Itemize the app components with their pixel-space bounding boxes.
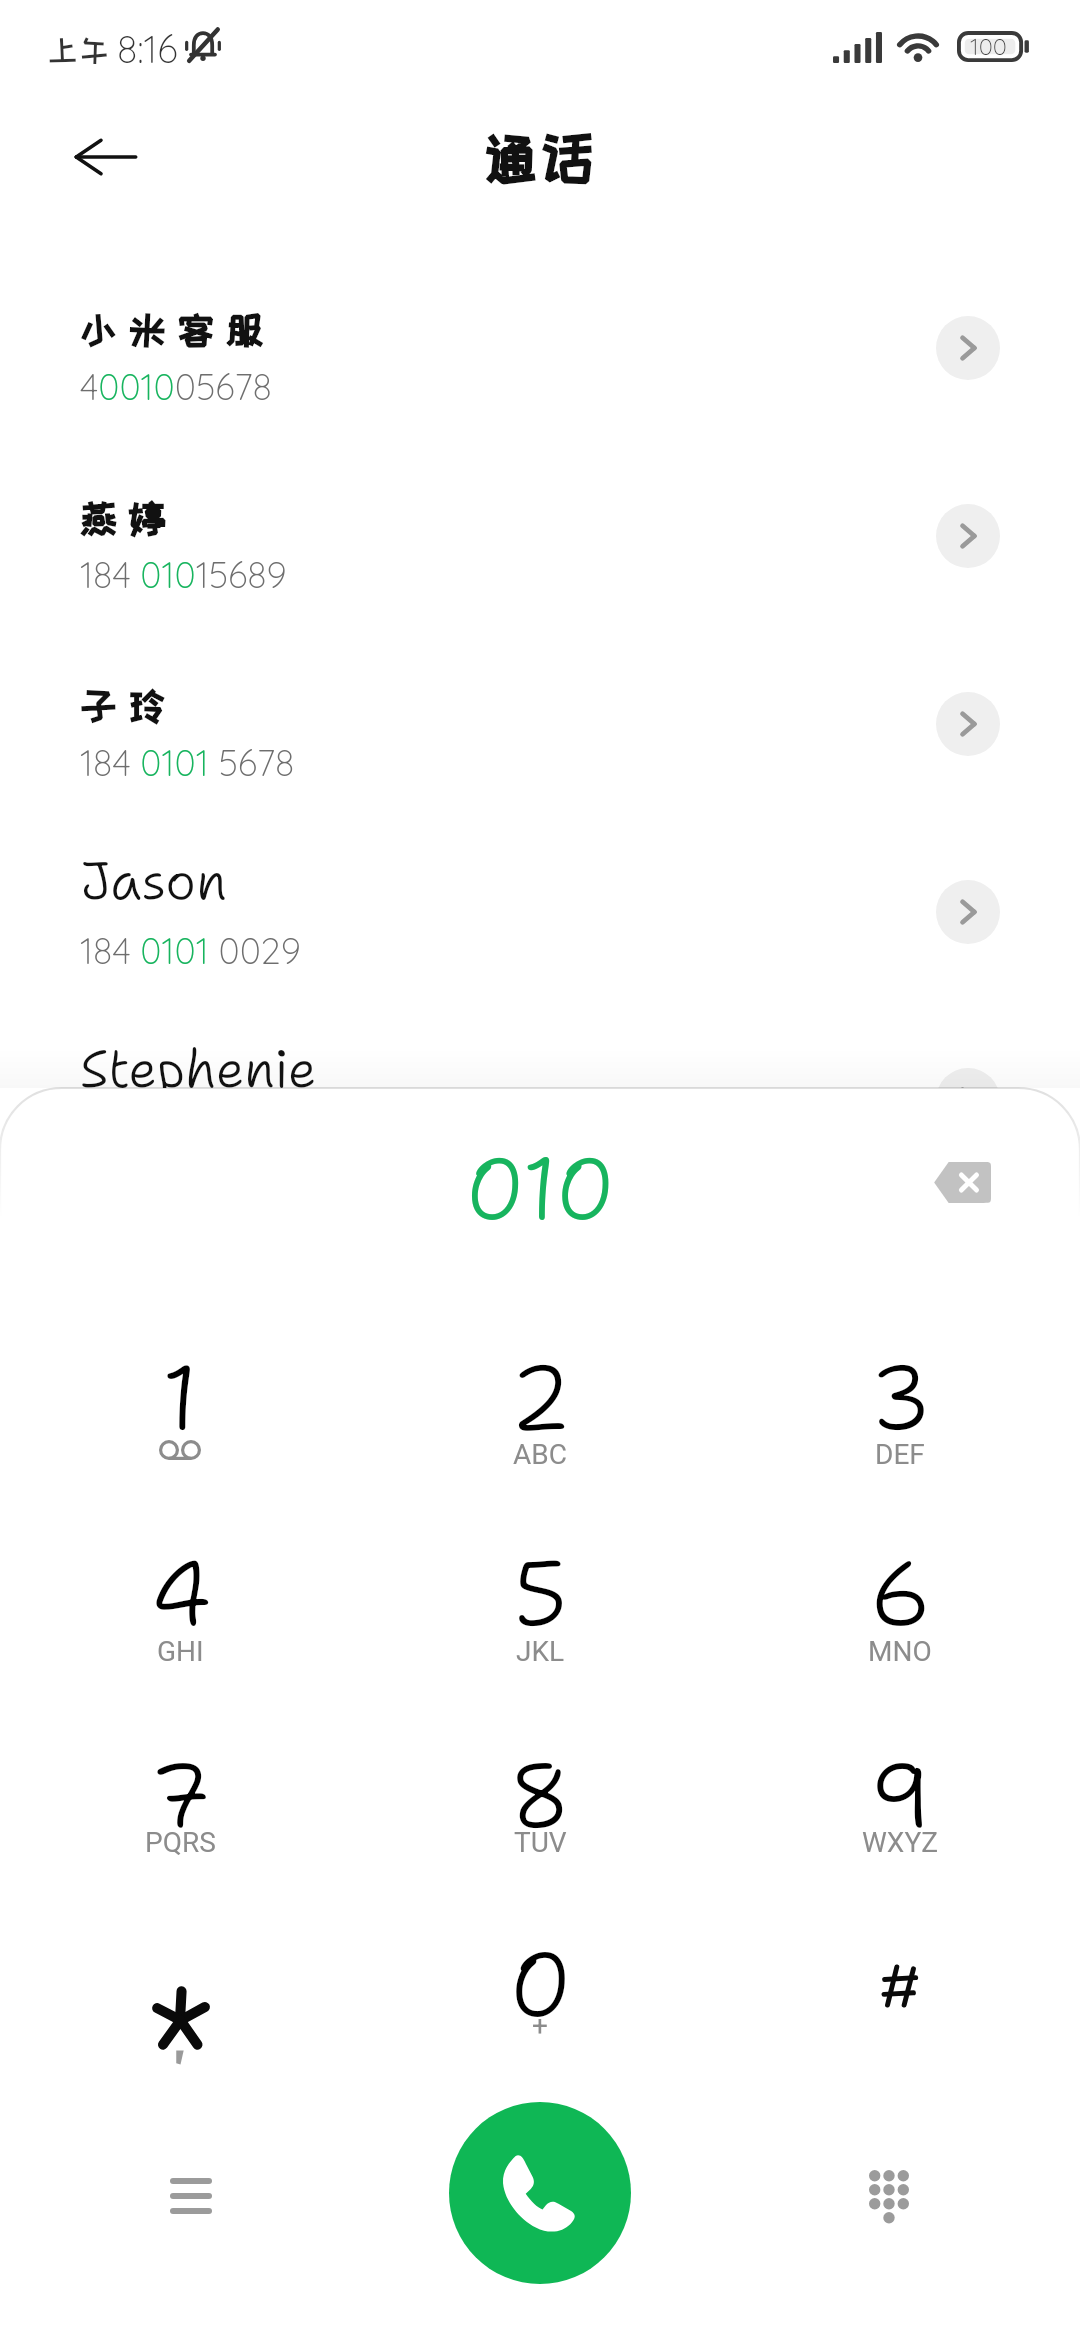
button[interactable]: 7 [0,1725,360,1915]
button[interactable]: 8 [360,1725,720,1915]
button[interactable]: 燕婷 [0,467,1080,655]
staticText: + [532,2009,548,2042]
staticText: 9 [869,1735,932,1856]
button[interactable]: Back [60,111,152,203]
staticText: DEF [875,1438,925,1471]
staticText: TUV [514,1826,567,1859]
staticText: 上午 [48,34,111,66]
button[interactable]: Call log [143,2148,239,2244]
button[interactable]: 6 [720,1523,1080,1713]
button[interactable]: 3 [720,1327,1080,1517]
staticText: WXYZ [862,1826,938,1859]
button[interactable]: Call [449,2102,631,2284]
staticText: 通话 [484,129,597,187]
button[interactable]: Open contact details [936,504,1000,568]
staticText: 8:16 [117,25,178,73]
button[interactable]: 4 [0,1523,360,1713]
staticText: 184 0101 0029 [80,928,301,973]
button[interactable]: Jason [0,843,1080,1031]
staticText: PQRS [145,1826,216,1859]
button[interactable]: Star [0,1914,360,2104]
staticText: 7 [149,1735,212,1856]
staticText: 184 01015689 [80,552,287,597]
staticText: 燕婷 [80,498,178,538]
staticText: 0 [509,1924,572,2045]
staticText: 100 [970,31,1007,61]
button[interactable]: Delete [912,1140,1012,1224]
staticText: MNO [868,1635,932,1668]
button[interactable]: Pound [720,1914,1080,2104]
staticText: 4 [149,1533,212,1654]
button[interactable]: Stephenie [0,1031,1080,1219]
button[interactable]: 0 [360,1914,720,2104]
staticText: 6 [869,1533,932,1654]
staticText: Jason [80,846,228,916]
staticText: 8 [509,1735,572,1856]
staticText: 1 [162,1337,199,1458]
staticText: 子玲 [80,686,178,726]
button[interactable]: Open contact details [936,880,1000,944]
staticText: 184 0101 5678 [80,740,295,785]
staticText: JKL [516,1635,565,1668]
button[interactable]: 子玲 [0,655,1080,843]
button[interactable]: Open contact details [936,1068,1000,1132]
button[interactable]: Open contact details [936,316,1000,380]
staticText: 3 [869,1337,932,1458]
staticText: 010 [465,1131,616,1246]
staticText: 小米客服 [80,310,276,350]
button[interactable]: 小米客服 [0,279,1080,467]
staticText: 2 [509,1337,572,1458]
button[interactable]: Open contact details [936,692,1000,756]
staticText: 5 [513,1533,568,1654]
staticText: GHI [157,1635,204,1668]
button[interactable]: 1 [0,1327,360,1517]
staticText: Stephenie [80,1034,317,1104]
staticText: 4001005678 [80,364,272,409]
button[interactable]: 2 [360,1327,720,1517]
staticText: ABC [513,1438,567,1471]
button[interactable]: Keypad [841,2148,937,2244]
button[interactable]: 5 [360,1523,720,1713]
button[interactable]: 9 [720,1725,1080,1915]
